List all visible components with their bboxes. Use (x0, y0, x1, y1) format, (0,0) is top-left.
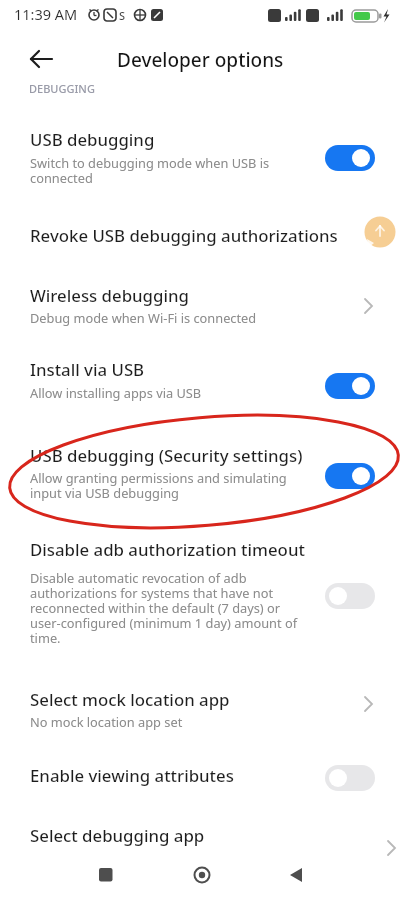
staticText: Allow granting permissions and simulatin… (30, 469, 287, 502)
button[interactable]: USB debugging (0, 118, 404, 202)
button[interactable] (88, 856, 124, 892)
button[interactable] (184, 856, 220, 892)
button[interactable] (325, 463, 375, 489)
staticText: Select debugging app (30, 824, 205, 847)
staticText: Revoke USB debugging authorizations (30, 224, 338, 247)
staticText: DEBUGGING (29, 81, 95, 96)
button[interactable]: Revoke USB debugging authorizations (0, 214, 404, 262)
button[interactable] (325, 373, 375, 399)
staticText: No mock location app set (30, 713, 183, 730)
staticText: Select mock location app (30, 688, 230, 711)
staticText: 11:39 AM (14, 4, 78, 24)
staticText: Developer options (117, 47, 284, 73)
button[interactable]: Disable adb authorization timeout (0, 530, 404, 648)
staticText: Disable automatic revocation of adb auth… (30, 569, 298, 647)
staticText: Disable adb authorization timeout (30, 538, 305, 561)
button[interactable]: Select debugging app (0, 816, 404, 860)
button[interactable]: Select mock location app (0, 680, 404, 736)
staticText: Allow installing apps via USB (30, 384, 202, 401)
button[interactable] (18, 40, 62, 78)
staticText: Switch to debugging mode when USB is con… (30, 154, 270, 187)
staticText: S (119, 8, 126, 23)
staticText: Wireless debugging (30, 284, 189, 307)
staticText: Enable viewing attributes (30, 764, 234, 787)
button[interactable]: Wireless debugging (0, 276, 404, 334)
button[interactable]: Install via USB (0, 350, 404, 408)
staticText: USB debugging (Security settings) (30, 444, 303, 467)
button[interactable] (325, 583, 375, 609)
button[interactable] (325, 145, 375, 171)
button[interactable] (325, 765, 375, 791)
button[interactable]: Enable viewing attributes (0, 756, 404, 802)
button[interactable]: USB debugging (Security settings) (0, 436, 404, 510)
staticText: Install via USB (30, 358, 145, 381)
staticText: Debug mode when Wi-Fi is connected (30, 309, 257, 326)
staticText: USB debugging (30, 128, 155, 151)
button[interactable] (278, 856, 314, 892)
